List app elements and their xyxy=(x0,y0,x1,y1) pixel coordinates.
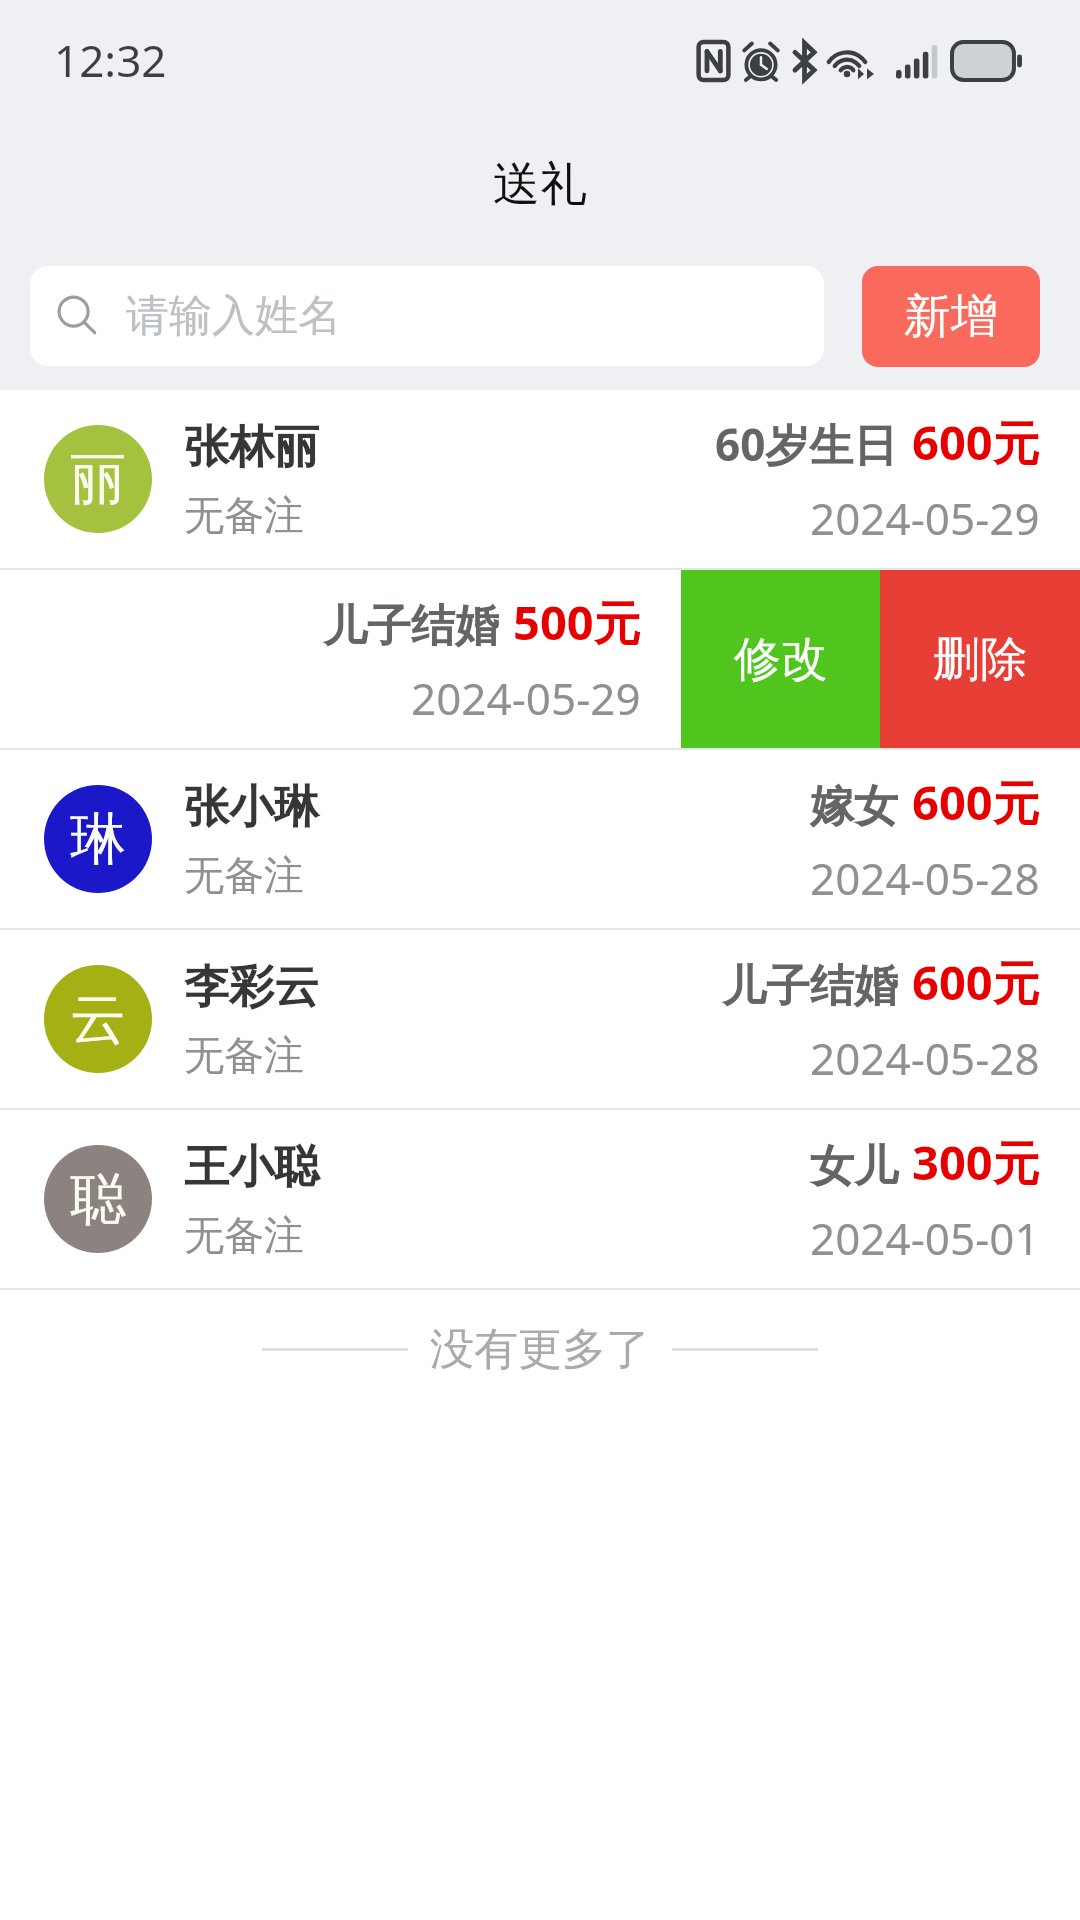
staticText: 张小琳 xyxy=(184,779,319,836)
button[interactable]: 删除 xyxy=(880,570,1080,748)
staticText: 无备注 xyxy=(184,1030,304,1080)
staticText: 600元 xyxy=(912,410,1040,474)
staticText: 删除 xyxy=(933,630,1027,689)
staticText: 新增 xyxy=(904,287,998,346)
staticText: 丽 xyxy=(70,444,126,515)
button[interactable]: 新增 xyxy=(862,266,1040,367)
staticText: 2024-05-29 xyxy=(810,488,1040,548)
staticText: 送礼 xyxy=(493,155,587,214)
button[interactable]: 聪 xyxy=(0,1110,1080,1288)
staticText: 女儿 xyxy=(810,1139,898,1194)
staticText: 聪 xyxy=(70,1164,126,1235)
staticText: 2024-05-29 xyxy=(411,668,641,728)
button[interactable]: 请输入姓名 xyxy=(30,266,824,366)
staticText: 李彩云 xyxy=(184,959,319,1016)
staticText: 王小聪 xyxy=(184,1139,319,1196)
button[interactable]: 琳 xyxy=(0,750,1080,928)
staticText: 无备注 xyxy=(184,850,304,900)
staticText: 没有更多了 xyxy=(430,1322,650,1377)
staticText: 琳 xyxy=(70,804,126,875)
staticText: 张林丽 xyxy=(184,419,319,476)
staticText: 请输入姓名 xyxy=(126,289,341,343)
staticText: 儿子结婚 xyxy=(722,959,898,1014)
staticText: 2024-05-28 xyxy=(810,1028,1040,1088)
staticText: 修改 xyxy=(734,630,828,689)
button[interactable]: 云 xyxy=(0,930,1080,1108)
staticText: 云 xyxy=(70,984,126,1055)
staticText: 60岁生日 xyxy=(715,414,898,474)
staticText: 无备注 xyxy=(184,1210,304,1260)
staticText: 无备注 xyxy=(184,490,304,540)
staticText: 儿子结婚 xyxy=(323,599,499,654)
staticText: 2024-05-28 xyxy=(810,848,1040,908)
staticText: 300元 xyxy=(912,1130,1040,1194)
staticText: 500元 xyxy=(513,590,641,654)
staticText: 12:32 xyxy=(54,30,167,90)
staticText: 600元 xyxy=(912,950,1040,1014)
staticText: 嫁女 xyxy=(810,779,898,834)
staticText: 2024-05-01 xyxy=(810,1208,1040,1268)
button[interactable]: 丽 xyxy=(0,390,1080,568)
staticText: 600元 xyxy=(912,770,1040,834)
button[interactable]: 修改 xyxy=(681,570,880,748)
